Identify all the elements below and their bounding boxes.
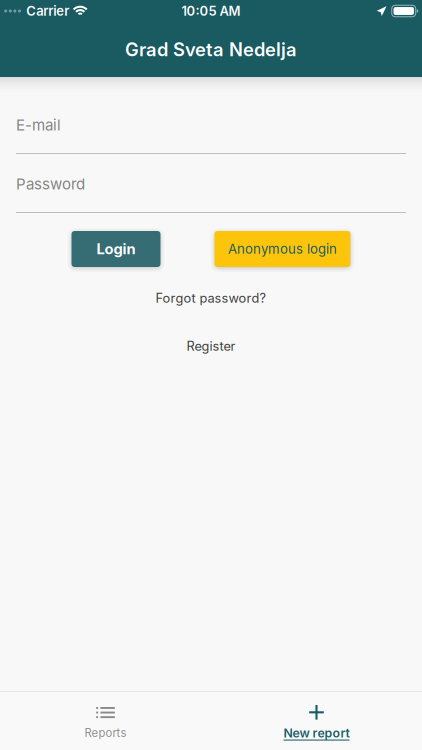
button[interactable]: Login bbox=[71, 231, 160, 267]
button[interactable]: Register bbox=[16, 333, 406, 359]
button[interactable]: Reports bbox=[0, 692, 211, 750]
button[interactable]: New report bbox=[211, 692, 422, 750]
button[interactable]: Anonymous login bbox=[214, 231, 350, 267]
staticText: Login bbox=[96, 240, 135, 258]
staticText: Password bbox=[16, 175, 85, 193]
staticText: 10:05 AM bbox=[181, 3, 240, 19]
staticText: E-mail bbox=[16, 116, 61, 134]
staticText: Reports bbox=[84, 726, 126, 740]
button[interactable]: Forgot password? bbox=[16, 283, 406, 313]
staticText: New report bbox=[283, 726, 349, 740]
staticText: Anonymous login bbox=[228, 241, 337, 257]
staticText: Register bbox=[186, 338, 235, 354]
staticText: Carrier bbox=[26, 3, 69, 19]
staticText: Forgot password? bbox=[155, 290, 266, 306]
staticText: Grad Sveta Nedelja bbox=[125, 38, 297, 61]
